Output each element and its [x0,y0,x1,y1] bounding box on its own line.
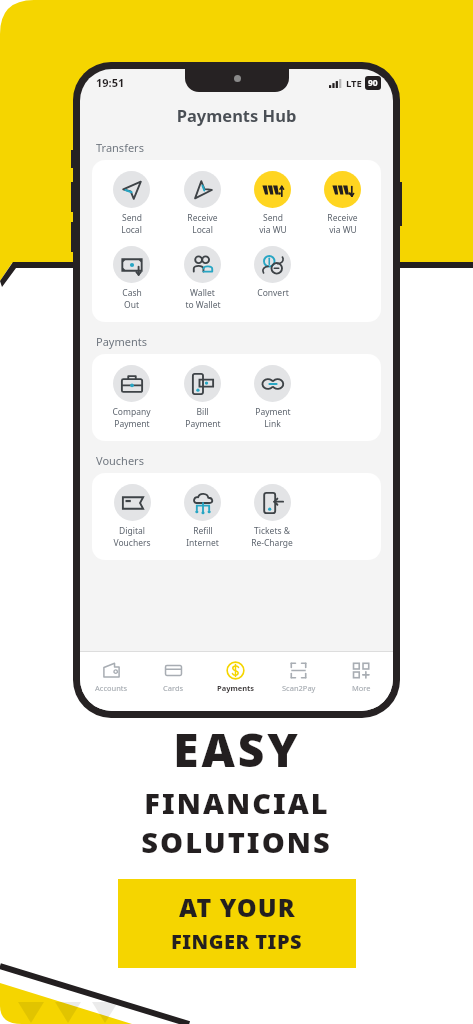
button[interactable]: Digital [113,483,151,550]
button[interactable]: Refill [184,483,221,550]
staticText: Payments [96,334,147,349]
staticText: Cards [163,683,184,693]
staticText: Refill [193,525,213,537]
button[interactable]: Company [112,364,151,431]
staticText: 90 [368,77,378,89]
staticText: Payments [217,683,255,693]
staticText: Bill [196,406,209,418]
staticText: Tickets & [254,525,290,537]
staticText: Re-Charge [251,537,293,549]
staticText: Scan2Pay [282,683,316,693]
staticText: to Wallet [185,299,221,311]
staticText: AT YOUR [179,890,296,924]
staticText: Transfers [96,140,144,155]
staticText: SOLUTIONS [141,822,332,861]
staticText: Payment [114,418,150,430]
staticText: Out [124,299,139,311]
staticText: Send [263,212,283,224]
button[interactable]: Scan2Pay [267,659,330,695]
staticText: Link [264,418,281,430]
button[interactable]: Payment [254,364,291,431]
staticText: LTE [346,77,362,90]
button[interactable]: More [330,659,393,695]
staticText: Convert [257,287,289,299]
staticText: Vouchers [113,537,151,549]
staticText: via WU [259,224,287,236]
staticText: EASY [173,718,301,781]
staticText: Send [122,212,142,224]
button[interactable]: Accounts [80,659,142,695]
staticText: Receive [187,212,218,224]
staticText: Wallet [190,287,215,299]
button[interactable]: Receive [324,170,361,237]
button[interactable]: Send [254,170,291,237]
staticText: Local [121,224,142,236]
staticText: Payment [185,418,221,430]
button[interactable]: Cards [142,659,204,695]
staticText: Vouchers [96,453,144,468]
staticText: FINANCIAL [144,783,330,822]
staticText: Accounts [95,683,128,693]
staticText: More [352,683,371,693]
staticText: Payments Hub [80,104,393,126]
staticText: via WU [329,224,357,236]
staticText: FINGER TIPS [171,928,303,955]
staticText: Company [112,406,151,418]
button[interactable]: Wallet [184,245,221,312]
staticText: Digital [119,525,145,537]
staticText: Cash [122,287,142,299]
button[interactable]: Tickets & [251,483,293,550]
button[interactable]: Payments [204,659,267,695]
staticText: Payment [255,406,291,418]
button[interactable]: Cash [113,245,150,312]
button[interactable]: Bill [184,364,221,431]
staticText: Local [192,224,213,236]
button[interactable]: Receive [184,170,221,237]
staticText: 19:51 [96,75,125,90]
button[interactable]: Send [113,170,150,237]
staticText: Receive [327,212,358,224]
button[interactable]: Convert [254,245,291,300]
staticText: Internet [186,537,219,549]
